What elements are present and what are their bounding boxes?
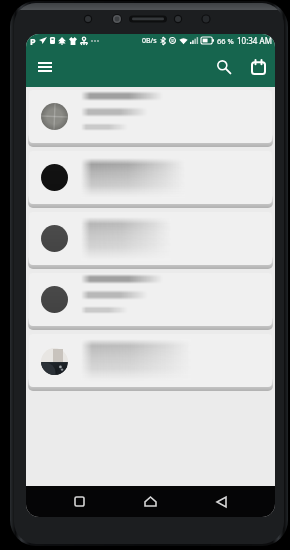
button[interactable]: Home [133, 486, 167, 517]
staticText: 10:34 AM [237, 35, 272, 46]
button[interactable] [29, 334, 272, 387]
staticText: 0B/s [142, 36, 157, 46]
button[interactable] [29, 212, 272, 265]
button[interactable]: Back [204, 486, 238, 517]
button[interactable]: Search [209, 50, 239, 84]
button[interactable]: Recents [62, 486, 96, 517]
staticText: 66 % [217, 36, 234, 46]
button[interactable]: Calendar [243, 50, 273, 84]
button[interactable]: Open navigation menu [31, 50, 59, 84]
button[interactable] [29, 151, 272, 204]
button[interactable] [29, 90, 272, 143]
button[interactable] [29, 273, 272, 326]
staticText: P [30, 35, 36, 47]
